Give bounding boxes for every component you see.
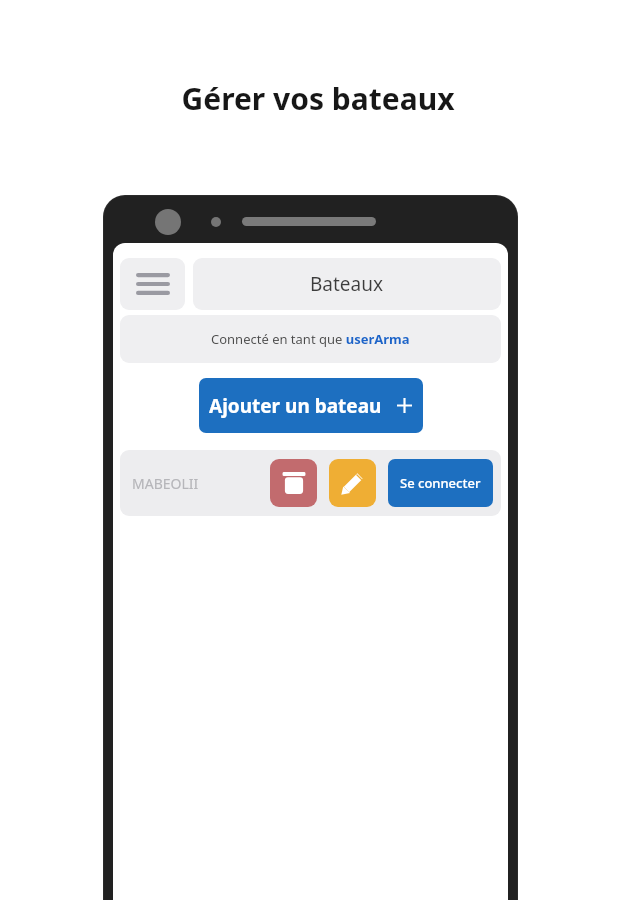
staticText: MABEOLII: [132, 474, 270, 493]
button[interactable]: Supprimer: [270, 459, 317, 507]
staticText: Gérer vos bateaux: [0, 78, 636, 119]
button[interactable]: Bateaux: [193, 258, 501, 310]
button[interactable]: Menu: [120, 258, 185, 310]
staticText: Se connecter: [400, 474, 481, 492]
staticText: Connecté en tant que userArma: [211, 330, 410, 348]
staticText: Ajouter un bateau: [209, 393, 382, 419]
staticText: Bateaux: [310, 271, 384, 297]
button[interactable]: Se connecter: [388, 459, 493, 507]
button[interactable]: Ajouter un bateau: [199, 378, 423, 433]
button[interactable]: Modifier: [329, 459, 376, 507]
